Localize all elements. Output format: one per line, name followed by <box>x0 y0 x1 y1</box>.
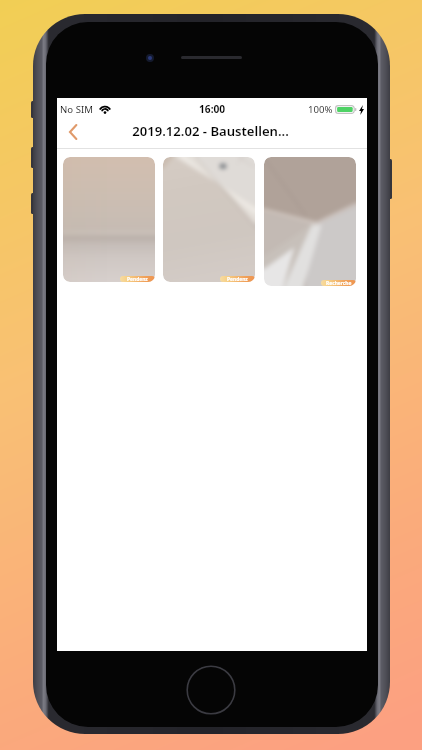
staticText: Recherche <box>326 280 352 286</box>
staticText: Pendenz <box>227 276 248 282</box>
button[interactable]: Pendenz <box>63 157 155 282</box>
button[interactable]: Recherche <box>264 157 356 286</box>
staticText: 2019.12.02 - Baustellen... <box>132 122 289 140</box>
staticText: No SIM <box>60 103 94 116</box>
staticText: 100% <box>308 103 333 116</box>
button[interactable]: Back <box>57 118 87 148</box>
staticText: 16:00 <box>199 102 226 116</box>
button[interactable]: Pendenz <box>163 157 255 282</box>
staticText: Pendenz <box>127 276 148 282</box>
